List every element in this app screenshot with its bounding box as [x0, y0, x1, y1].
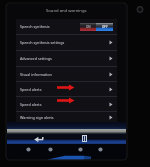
button[interactable]: Visual information: [16, 67, 117, 81]
button[interactable]: Recent apps: [82, 135, 87, 142]
staticText: Speech synthesis settings: [20, 40, 65, 45]
button[interactable]: Home: [25, 146, 32, 153]
staticText: Warning sign alerts: [20, 115, 54, 120]
button[interactable]: Speech synthesis settings: [16, 35, 117, 50]
staticText: Visual information: [20, 72, 52, 77]
button[interactable]: ON: [80, 23, 113, 31]
staticText: Advanced settings: [20, 56, 52, 61]
button[interactable]: Media: [77, 146, 84, 153]
button[interactable]: Back: [34, 136, 44, 142]
button[interactable]: Warning sign alerts: [16, 112, 117, 122]
button[interactable]: Navigation: [47, 146, 54, 153]
staticText: Speed alerts: [20, 102, 42, 107]
button[interactable]: Settings: [97, 146, 104, 153]
staticText: Speech synthesis: [20, 24, 50, 29]
staticText: Speed alerts: [20, 87, 42, 92]
button[interactable]: Speed alerts: [16, 82, 117, 96]
button[interactable]: Speed alerts: [16, 97, 117, 111]
staticText: Sound and warnings: [46, 8, 87, 14]
button[interactable]: Speech synthesis: [16, 19, 117, 34]
staticText: OFF: [102, 25, 108, 29]
button[interactable]: Advanced settings: [16, 51, 117, 66]
staticText: ON: [86, 25, 91, 29]
